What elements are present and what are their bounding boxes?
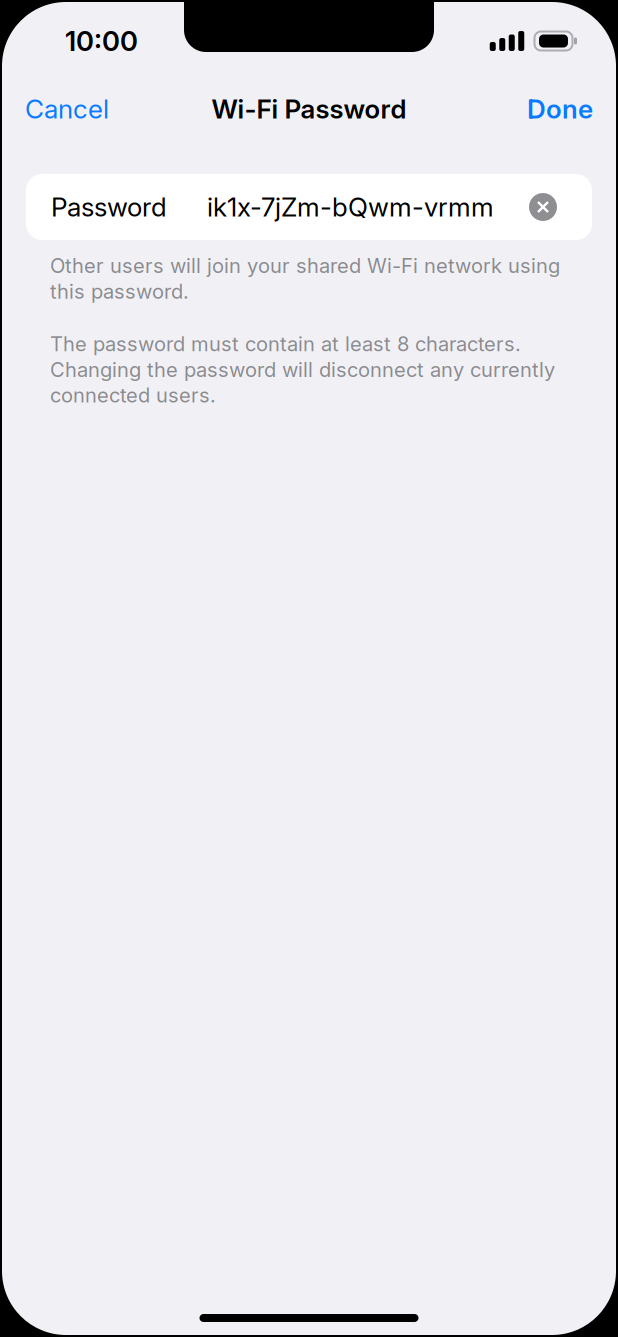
button[interactable]: Password bbox=[26, 174, 592, 240]
staticText: Password bbox=[51, 191, 167, 223]
staticText: Done bbox=[527, 93, 593, 125]
staticText: 10:00 bbox=[65, 24, 138, 58]
button[interactable]: Done bbox=[517, 83, 593, 135]
staticText: Wi-Fi Password bbox=[211, 93, 406, 125]
staticText: this password. bbox=[50, 279, 189, 304]
staticText: ik1x-7jZm-bQwm-vrmm bbox=[207, 191, 494, 223]
staticText: Changing the password will disconnect an… bbox=[50, 357, 555, 382]
button[interactable]: Clear password bbox=[529, 193, 557, 221]
staticText: Cancel bbox=[25, 93, 109, 125]
staticText: The password must contain at least 8 cha… bbox=[50, 332, 521, 356]
staticText: Other users will join your shared Wi-Fi … bbox=[50, 254, 560, 278]
staticText: connected users. bbox=[50, 383, 216, 407]
button[interactable]: Cancel bbox=[25, 83, 119, 135]
